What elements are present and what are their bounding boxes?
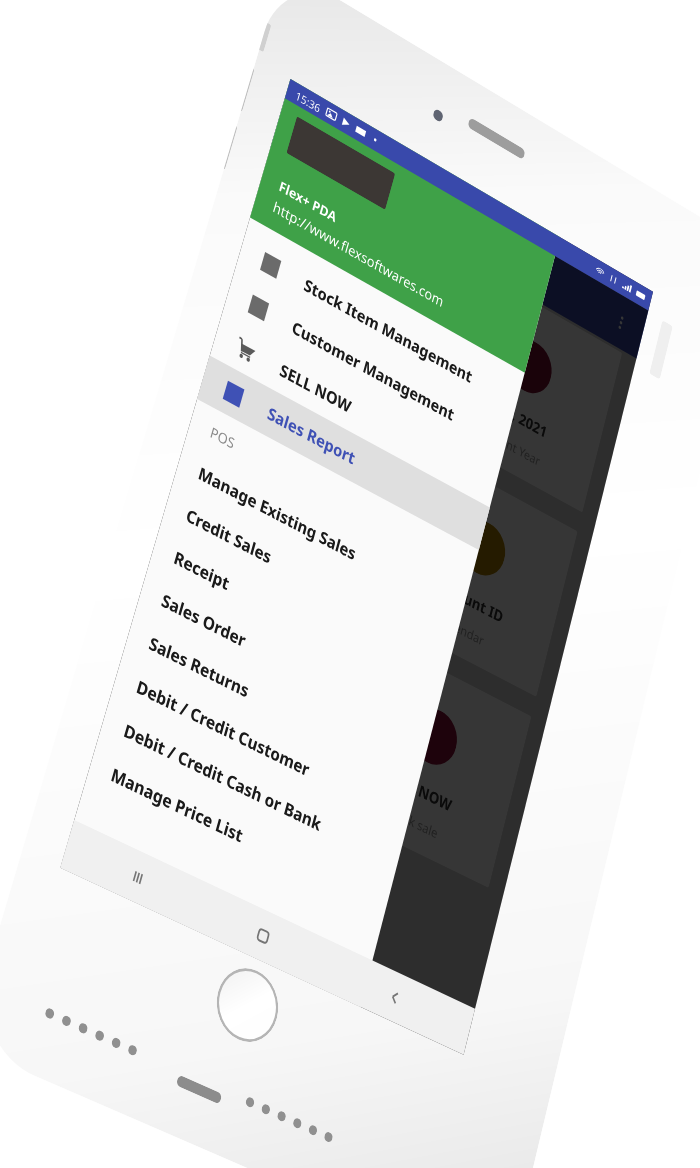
staticText: SELL NOW xyxy=(277,358,354,418)
staticText: Calendar xyxy=(438,609,487,650)
button[interactable]: Manage Existing Sales xyxy=(173,441,468,631)
staticText: Manage Existing Sales xyxy=(196,461,359,565)
staticText: BUY NOW xyxy=(196,669,267,722)
button[interactable]: Sales Report xyxy=(197,355,490,550)
button[interactable]: Year, 2020 xyxy=(237,159,450,416)
staticText: Year, 2020 xyxy=(305,290,373,343)
staticText: Calendar xyxy=(251,512,303,554)
staticText: Flex+ PDA xyxy=(277,176,339,226)
button[interactable]: Debit / Credit Cash or Bank xyxy=(97,697,403,884)
staticText: 15:36 xyxy=(294,87,323,116)
button[interactable]: Recents xyxy=(60,820,213,932)
staticText: Quick sale xyxy=(384,800,440,842)
staticText: Year, 2021 xyxy=(485,390,549,442)
staticText: Company ID xyxy=(243,471,328,533)
button[interactable]: Customer Management xyxy=(222,269,512,465)
button[interactable]: Receipt xyxy=(148,525,447,714)
staticText: Sales Report xyxy=(265,401,358,470)
staticText: Account Year xyxy=(476,419,543,470)
button[interactable]: Company ID xyxy=(182,342,401,603)
staticText: Credit Sales xyxy=(184,503,274,569)
staticText: Purchase xyxy=(196,707,250,749)
staticText: Debit / Credit Customer xyxy=(134,674,313,782)
button[interactable]: Home xyxy=(200,885,324,984)
staticText: Account ID xyxy=(433,572,506,627)
staticText: Stock Item Management xyxy=(302,273,475,388)
button[interactable]: Back xyxy=(312,938,475,1055)
button[interactable]: Stock Item Management xyxy=(235,227,522,423)
button[interactable]: Manage Price List xyxy=(84,741,392,927)
button[interactable]: Sales Order xyxy=(135,567,436,756)
button[interactable]: SELL NOW xyxy=(319,631,531,888)
button[interactable]: SELL NOW xyxy=(210,312,501,507)
button[interactable]: Sales Returns xyxy=(123,610,425,798)
staticText: Sales Order xyxy=(159,588,249,653)
button[interactable]: Year, 2021 xyxy=(421,262,622,513)
staticText: Account Year xyxy=(295,319,365,372)
staticText: Debit / Credit Cash or Bank xyxy=(121,718,324,836)
button[interactable]: More options xyxy=(608,306,633,339)
button[interactable]: Account ID xyxy=(371,443,578,697)
staticText: Receipt xyxy=(171,545,232,596)
button[interactable]: Debit / Credit Customer xyxy=(110,653,414,841)
staticText: SELL NOW xyxy=(385,763,454,816)
staticText: Sales Returns xyxy=(146,631,252,703)
staticText: Customer Management xyxy=(290,315,457,426)
staticText: Manage Price List xyxy=(108,762,246,848)
staticText: POS xyxy=(208,422,238,453)
button[interactable]: Credit Sales xyxy=(160,482,458,672)
button[interactable]: BUY NOW xyxy=(125,533,351,798)
staticText: http://www.flexsoftwares.com xyxy=(271,197,447,312)
